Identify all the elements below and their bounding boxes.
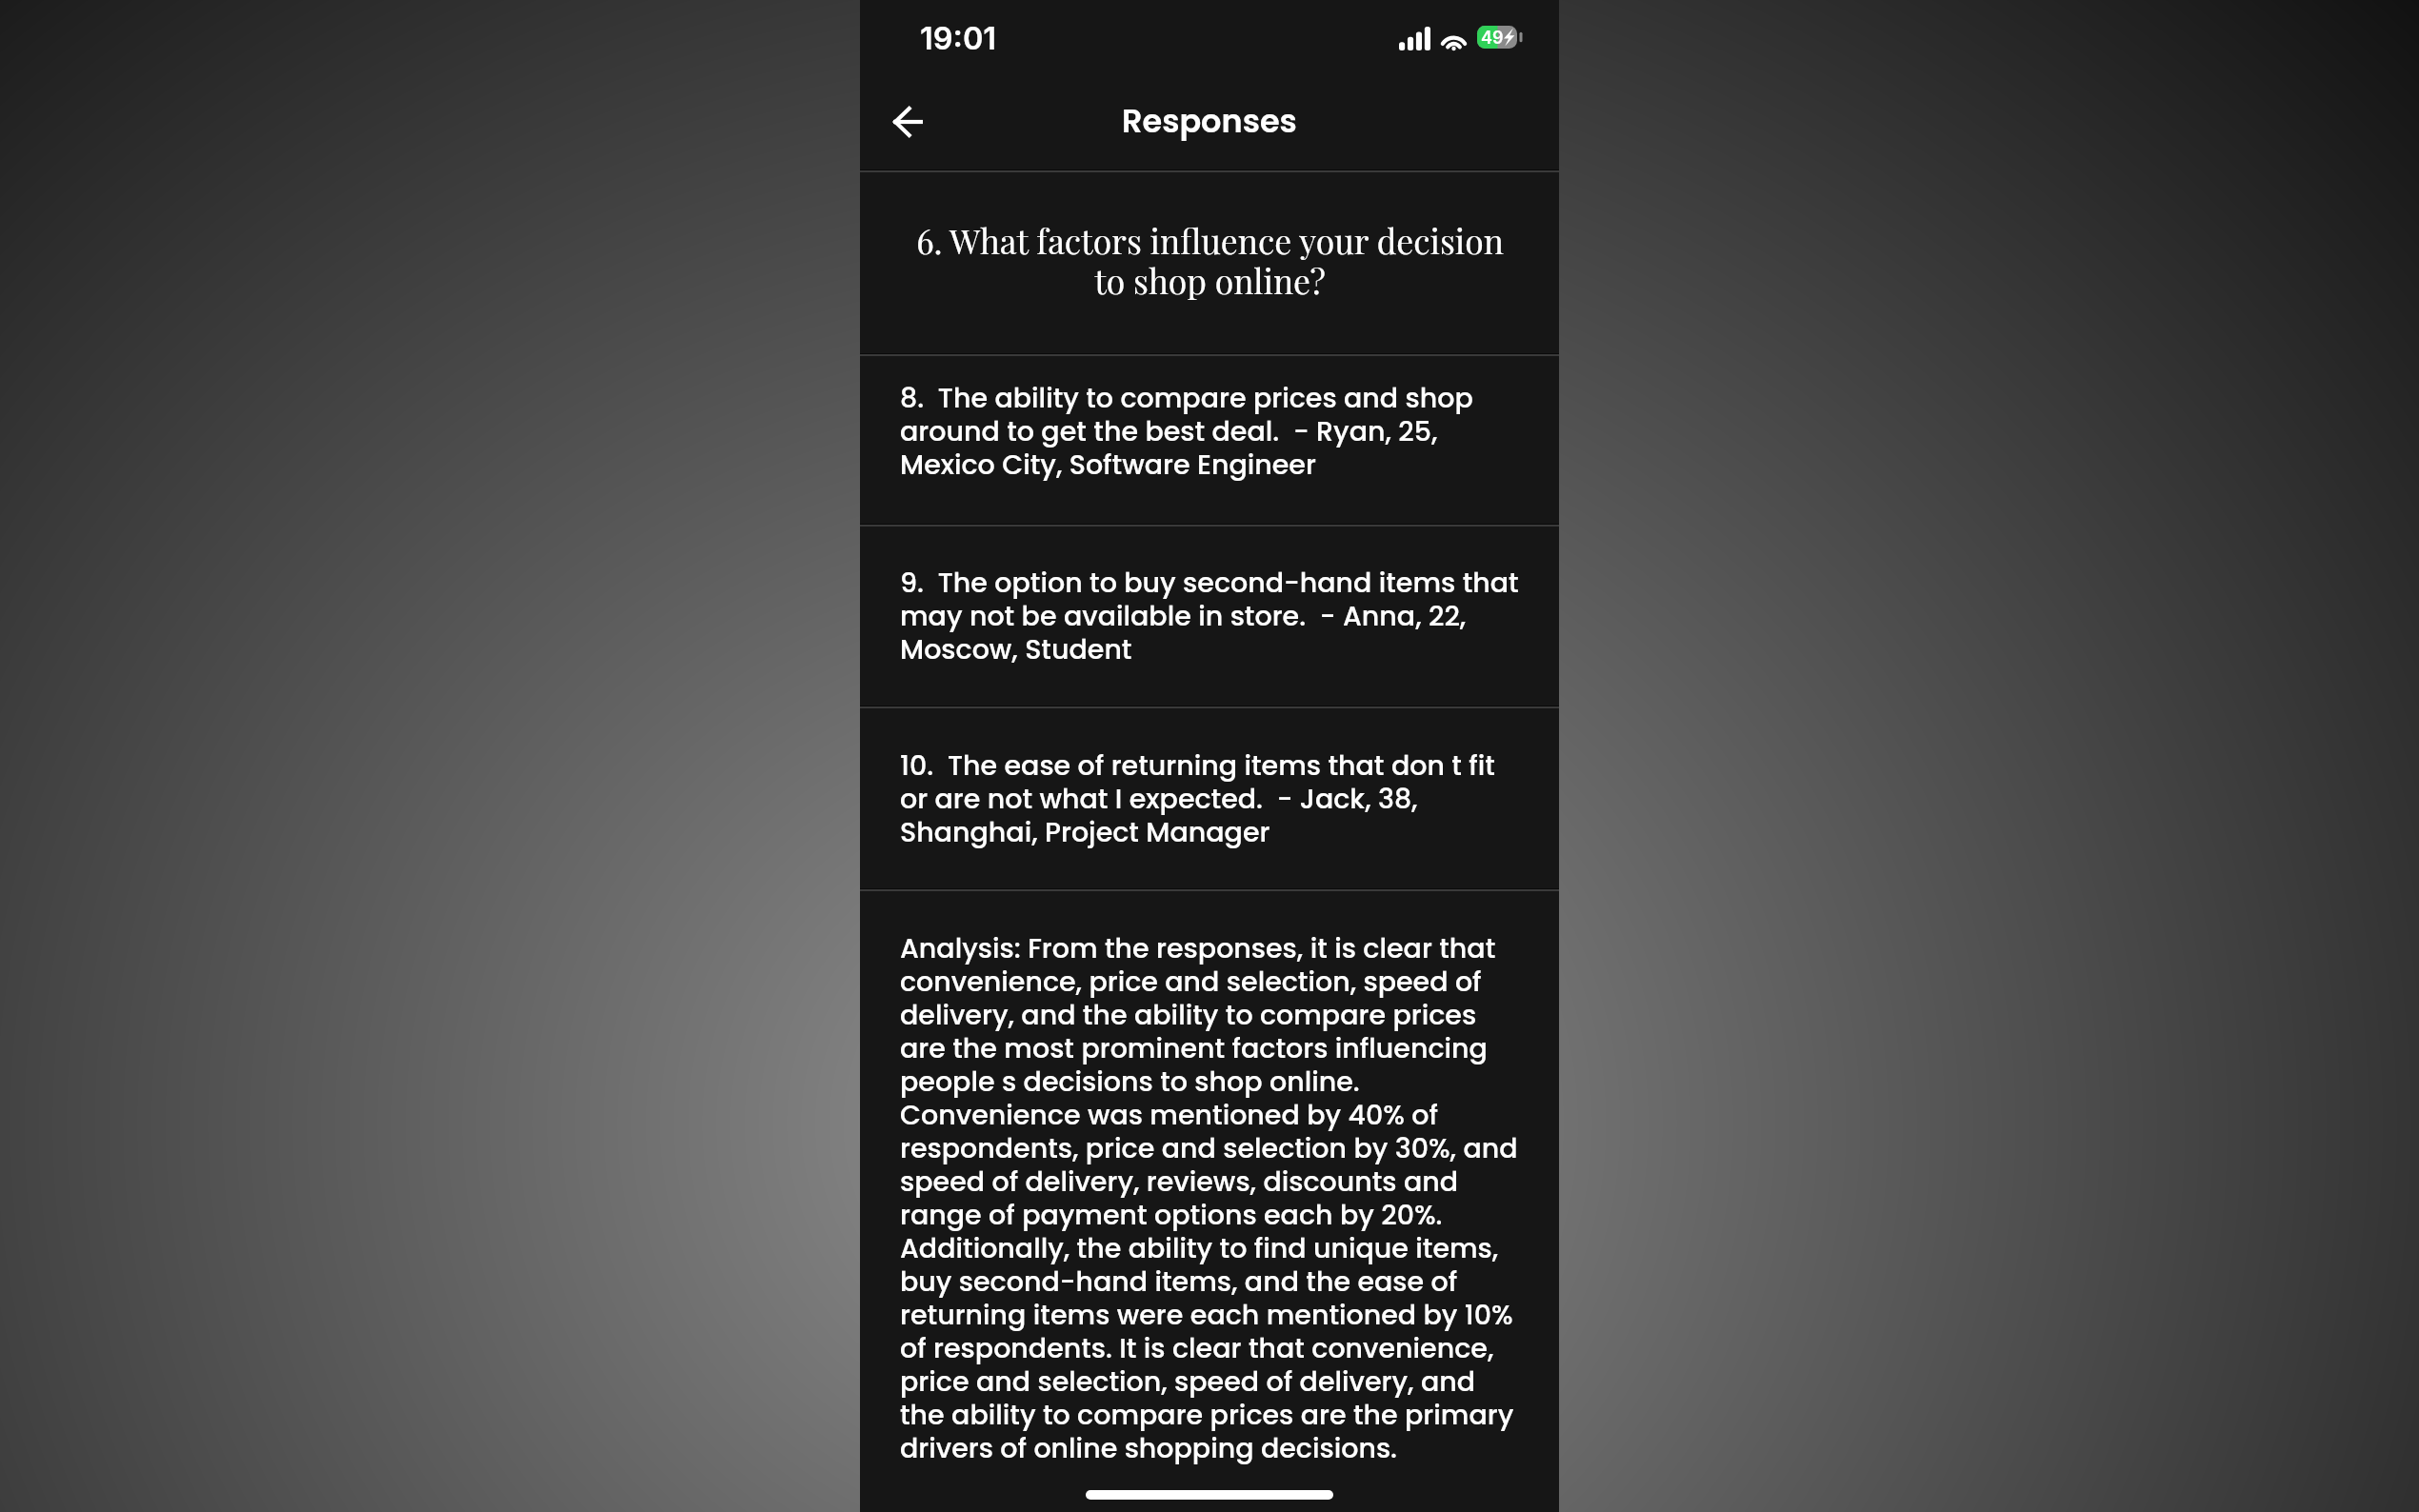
staticText: 6. What factors influence your decision … <box>916 218 1504 303</box>
staticText: 49 <box>1481 28 1504 49</box>
button[interactable]: 9. The option to buy second-hand items t… <box>860 527 1559 706</box>
staticText: 10. The ease of returning items that don… <box>900 746 1524 851</box>
button[interactable]: Back <box>871 86 944 158</box>
button[interactable]: 10. The ease of returning items that don… <box>860 708 1559 888</box>
staticText: 8. The ability to compare prices and sho… <box>900 379 1524 484</box>
staticText: 9. The option to buy second-hand items t… <box>900 564 1524 668</box>
button[interactable]: 8. The ability to compare prices and sho… <box>860 356 1559 524</box>
staticText: Analysis: From the responses, it is clea… <box>900 929 1524 1467</box>
staticText: 19:01 <box>920 20 997 57</box>
staticText: Responses <box>1122 99 1297 144</box>
